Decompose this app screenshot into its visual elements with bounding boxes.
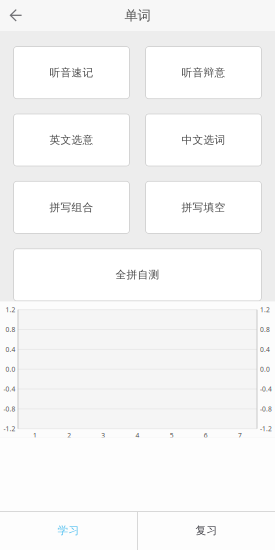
staticText: 听音辩意 — [181, 66, 225, 79]
button[interactable]: 拼写填空 — [145, 181, 262, 234]
staticText: 听音速记 — [49, 66, 93, 79]
staticText: 6 — [204, 431, 208, 440]
staticText: 3 — [101, 431, 105, 440]
staticText: 拼写组合 — [49, 201, 93, 214]
staticText: 学习 — [57, 524, 79, 537]
button[interactable]: 听音辩意 — [145, 46, 262, 99]
button[interactable]: 英文选意 — [13, 113, 130, 167]
staticText: 拼写填空 — [181, 201, 225, 214]
staticText: 英文选意 — [49, 133, 93, 146]
staticText: 0.0 — [5, 365, 15, 374]
staticText: -0.4 — [3, 385, 15, 393]
staticText: 7 — [238, 431, 242, 440]
staticText: 4 — [135, 431, 139, 440]
staticText: 0.4 — [5, 345, 15, 354]
staticText: 0.4 — [260, 345, 270, 354]
staticText: -0.8 — [260, 404, 272, 413]
button[interactable]: 全拼自测 — [13, 248, 262, 301]
staticText: 0.0 — [260, 365, 270, 374]
staticText: 2 — [67, 431, 71, 440]
staticText: -1.2 — [3, 424, 15, 433]
staticText: 0.8 — [5, 325, 15, 334]
staticText: 1.2 — [5, 305, 15, 314]
button[interactable]: 学习 — [0, 511, 137, 550]
staticText: 1.2 — [260, 305, 270, 314]
staticText: 单词 — [124, 7, 150, 24]
staticText: 中文选词 — [181, 133, 225, 146]
button[interactable]: 复习 — [138, 511, 275, 550]
button[interactable]: 中文选词 — [145, 113, 262, 167]
staticText: -0.4 — [260, 385, 272, 393]
button[interactable]: 拼写组合 — [13, 181, 130, 234]
staticText: 全拼自测 — [115, 268, 159, 281]
button[interactable]: Back — [0, 0, 33, 30]
staticText: -1.2 — [260, 424, 272, 433]
staticText: 5 — [170, 431, 174, 440]
button[interactable]: 听音速记 — [13, 46, 130, 99]
staticText: -0.8 — [3, 404, 15, 413]
staticText: 复习 — [195, 524, 217, 537]
staticText: 1 — [33, 431, 37, 440]
staticText: 0.8 — [260, 325, 270, 334]
